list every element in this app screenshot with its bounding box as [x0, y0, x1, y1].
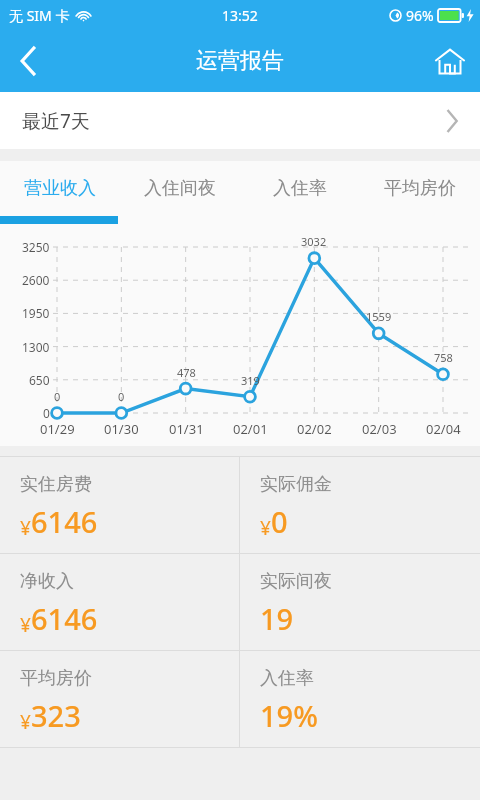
staticText: 13:52 — [222, 6, 258, 25]
staticText: 02/01 — [233, 420, 268, 438]
staticText: ¥ — [260, 515, 271, 541]
button[interactable]: 净收入 — [0, 554, 239, 650]
staticText: 0 — [54, 389, 61, 404]
staticText: ¥ — [20, 515, 31, 541]
staticText: 入住率 — [260, 667, 314, 690]
staticText: 6146 — [31, 502, 98, 541]
staticText: 2600 — [22, 272, 50, 288]
staticText: 758 — [434, 350, 453, 365]
staticText: 1300 — [22, 339, 50, 355]
staticText: 营业收入 — [24, 177, 96, 200]
button[interactable]: 实住房费 — [0, 457, 239, 553]
button[interactable]: 平均房价 — [0, 651, 239, 747]
button[interactable]: 营业收入 — [0, 161, 120, 216]
staticText: 运营报告 — [196, 47, 284, 75]
button[interactable]: 平均房价 — [360, 161, 480, 216]
staticText: 323 — [31, 696, 81, 735]
staticText: 650 — [29, 372, 50, 388]
staticText: ¥ — [20, 612, 31, 638]
button[interactable]: 入住间夜 — [120, 161, 240, 216]
staticText: 平均房价 — [384, 177, 456, 200]
staticText: 0 — [118, 389, 125, 404]
staticText: 02/04 — [426, 420, 461, 438]
staticText: 319 — [241, 373, 260, 388]
staticText: 实住房费 — [20, 473, 92, 496]
staticText: 平均房价 — [20, 667, 92, 690]
staticText: 0 — [271, 502, 288, 541]
staticText: 01/29 — [40, 420, 75, 438]
button[interactable]: 入住率 — [240, 651, 480, 747]
button[interactable]: 实际间夜 — [240, 554, 480, 650]
staticText: 0 — [43, 405, 50, 421]
staticText: 1559 — [366, 309, 392, 324]
staticText: ¥ — [20, 709, 31, 735]
button[interactable]: 实际佣金 — [240, 457, 480, 553]
staticText: 01/30 — [104, 420, 139, 438]
staticText: 02/02 — [297, 420, 332, 438]
staticText: 6146 — [31, 599, 98, 638]
button[interactable]: 入住率 — [240, 161, 360, 216]
staticText: 02/03 — [362, 420, 397, 438]
button[interactable]: Back — [0, 30, 56, 92]
staticText: 净收入 — [20, 570, 74, 593]
staticText: 19% — [260, 696, 318, 735]
staticText: 478 — [177, 365, 196, 380]
staticText: 01/31 — [169, 420, 204, 438]
staticText: 无 SIM 卡 — [9, 6, 70, 25]
button[interactable]: 最近7天 — [0, 92, 480, 149]
staticText: 96% — [406, 6, 434, 25]
staticText: 实际间夜 — [260, 570, 332, 593]
staticText: 入住间夜 — [144, 177, 216, 200]
staticText: 实际佣金 — [260, 473, 332, 496]
staticText: 3032 — [301, 234, 327, 249]
staticText: 1950 — [22, 305, 50, 321]
staticText: 3250 — [22, 239, 50, 255]
button[interactable]: Home — [420, 30, 480, 92]
staticText: 最近7天 — [22, 108, 90, 134]
staticText: 入住率 — [273, 177, 327, 200]
staticText: 19 — [260, 599, 294, 638]
